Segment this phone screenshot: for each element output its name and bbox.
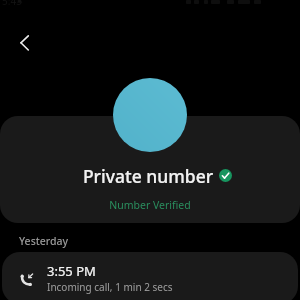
- button[interactable]: Back: [3, 21, 47, 65]
- staticText: Private number: [0, 164, 298, 188]
- button[interactable]: Private number: [0, 116, 300, 223]
- staticText: 3:55 PM: [47, 262, 96, 280]
- staticText: Yesterday: [19, 234, 69, 248]
- staticText: Incoming call, 1 min 2 secs: [47, 280, 173, 294]
- button[interactable]: 3:55 PM: [2, 252, 298, 300]
- staticText: Number Verified: [0, 198, 300, 212]
- staticText: 5:43: [2, 0, 22, 8]
- staticText: ▲: [17, 0, 23, 4]
